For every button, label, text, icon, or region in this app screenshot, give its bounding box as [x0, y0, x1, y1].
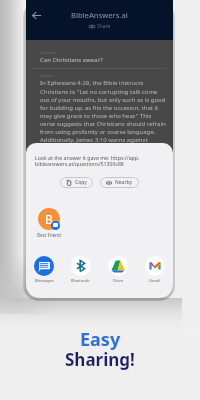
staticText: Copy: [75, 179, 87, 186]
button[interactable]: Copy: [60, 177, 93, 188]
button[interactable]: Back: [30, 9, 43, 22]
staticText: Gmail: [149, 278, 160, 283]
staticText: BibleAnswers.ai: [71, 10, 128, 20]
staticText: Share: [97, 23, 111, 30]
staticText: Best Friend: [37, 232, 61, 238]
button[interactable]: Drive: [99, 256, 136, 283]
staticText: Easy: [80, 327, 121, 352]
button[interactable]: Messages: [26, 256, 62, 283]
button[interactable]: Gmail: [136, 256, 173, 283]
staticText: Can Christians swear?: [40, 56, 103, 64]
staticText: Question: [40, 50, 58, 55]
staticText: B: [45, 211, 53, 227]
staticText: Look at the answer it gave me: https://a…: [35, 154, 155, 168]
staticText: Messages: [35, 278, 54, 283]
button[interactable]: Bluetooth: [62, 256, 99, 283]
button[interactable]: Nearby: [100, 177, 139, 188]
button[interactable]: B: [34, 208, 64, 238]
staticText: Nearby: [115, 179, 133, 186]
staticText: In Ephesians 4:29, the Bible instructs C…: [40, 79, 166, 143]
staticText: Answer: [40, 73, 54, 78]
staticText: Drive: [113, 278, 123, 283]
staticText: Bluetooth: [71, 278, 90, 283]
staticText: Sharing!: [65, 348, 135, 371]
